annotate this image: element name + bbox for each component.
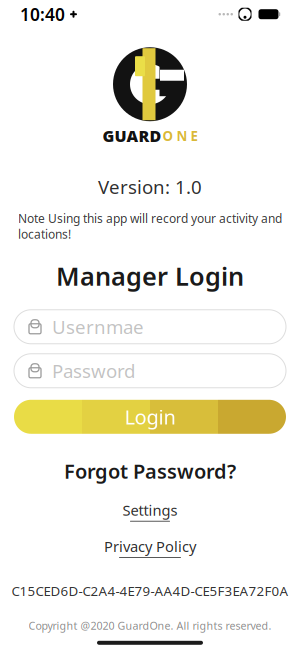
- staticText: Login: [124, 403, 175, 430]
- staticText: 10:40: [20, 3, 65, 26]
- button[interactable]: Settings: [112, 497, 187, 525]
- button[interactable]: Forgot Password?: [52, 453, 248, 489]
- staticText: Note Using this app will record your act…: [18, 210, 282, 242]
- staticText: Privacy Policy: [104, 537, 196, 556]
- button[interactable]: Login: [14, 400, 286, 434]
- staticText: Version: 1.0: [98, 174, 202, 199]
- button[interactable]: Privacy Policy: [94, 534, 206, 561]
- staticText: Forgot Password?: [64, 458, 236, 484]
- staticText: GUARD: [102, 125, 161, 146]
- staticText: Password: [52, 358, 135, 383]
- staticText: Settings: [122, 500, 177, 520]
- staticText: Copyright @2020 GuardOne. All rights res…: [28, 619, 271, 633]
- staticText: C15CED6D-C2A4-4E79-AA4D-CE5F3EA72F0A: [11, 582, 288, 600]
- staticText: O N E: [162, 127, 197, 145]
- staticText: Usernmae: [52, 314, 144, 339]
- staticText: Manager Login: [56, 259, 244, 293]
